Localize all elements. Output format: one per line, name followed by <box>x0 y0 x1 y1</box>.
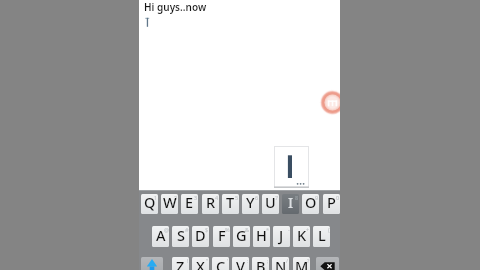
button[interactable]: Backspace <box>316 257 339 270</box>
button[interactable]: 1 <box>141 194 158 214</box>
button[interactable]: 9 <box>302 194 319 214</box>
staticText: H <box>256 226 267 245</box>
staticText: $ <box>205 226 209 233</box>
button[interactable]: @ <box>152 226 169 247</box>
staticText: 3 <box>194 194 198 201</box>
staticText: J <box>279 226 284 245</box>
staticText: Hi guys..now <box>144 0 207 14</box>
button[interactable]: " <box>192 257 209 270</box>
staticText: U <box>265 194 276 212</box>
staticText: 8 <box>295 194 299 201</box>
staticText: Z <box>176 257 185 270</box>
staticText: K <box>297 226 307 245</box>
button[interactable]: 4 <box>202 194 219 214</box>
staticText: ( <box>328 226 330 233</box>
button[interactable]: # <box>172 226 189 247</box>
staticText: / <box>286 257 289 264</box>
staticText: N <box>275 257 287 270</box>
staticText: O <box>305 194 317 212</box>
staticText: E <box>185 194 194 212</box>
staticText: @ <box>164 226 169 233</box>
staticText: T <box>226 194 235 212</box>
button[interactable]: + <box>293 226 310 247</box>
button[interactable]: : <box>232 257 249 270</box>
staticText: R <box>206 194 216 212</box>
button[interactable]: 5 <box>222 194 239 214</box>
button[interactable]: ! <box>172 257 189 270</box>
button[interactable]: ( <box>313 226 330 247</box>
staticText: ? <box>307 257 310 264</box>
staticText: D <box>195 226 206 245</box>
staticText: I <box>288 194 294 212</box>
staticText: : <box>247 257 249 264</box>
staticText: 4 <box>215 194 219 201</box>
button[interactable]: 8 <box>282 194 299 214</box>
button[interactable]: ; <box>252 257 269 270</box>
staticText: S <box>177 226 185 245</box>
button[interactable]: 7 <box>262 194 279 214</box>
staticText: ; <box>267 257 269 264</box>
staticText: L <box>318 226 326 245</box>
staticText: A <box>156 226 166 245</box>
staticText: + <box>306 226 310 233</box>
button[interactable]: % <box>213 226 230 247</box>
button[interactable]: 2 <box>161 194 178 214</box>
staticText: G <box>236 226 247 245</box>
staticText: & <box>245 226 250 233</box>
staticText: F <box>218 226 226 245</box>
button[interactable]: - <box>273 226 290 247</box>
staticText: * <box>266 226 270 233</box>
staticText: % <box>225 226 230 233</box>
staticText: - <box>288 226 290 233</box>
staticText: 6 <box>255 194 259 201</box>
button[interactable]: ? <box>293 257 310 270</box>
button[interactable]: $ <box>192 226 209 247</box>
staticText: M <box>295 257 309 270</box>
button[interactable]: * <box>253 226 270 247</box>
staticText: 9 <box>315 194 319 201</box>
staticText: ! <box>187 257 189 264</box>
staticText: W <box>163 194 177 212</box>
staticText: 1 <box>154 194 158 201</box>
button[interactable]: Shift <box>141 257 163 270</box>
staticText: 7 <box>275 194 279 201</box>
button[interactable]: ' <box>212 257 229 270</box>
staticText: Q <box>144 194 156 212</box>
button[interactable]: 0 <box>323 194 340 214</box>
button[interactable]: & <box>233 226 250 247</box>
button[interactable]: / <box>272 257 289 270</box>
staticText: C <box>216 257 226 270</box>
staticText: # <box>185 226 189 233</box>
staticText: 5 <box>235 194 239 201</box>
staticText: ' <box>227 257 229 264</box>
button[interactable]: 6 <box>242 194 259 214</box>
staticText: P <box>327 194 336 212</box>
staticText: Y <box>246 194 255 212</box>
button[interactable]: 3 <box>181 194 198 214</box>
staticText: 0 <box>336 194 340 201</box>
staticText: V <box>236 257 245 270</box>
staticText: 2 <box>174 194 178 201</box>
staticText: B <box>256 257 266 270</box>
staticText: X <box>196 257 205 270</box>
staticText: " <box>206 257 209 264</box>
